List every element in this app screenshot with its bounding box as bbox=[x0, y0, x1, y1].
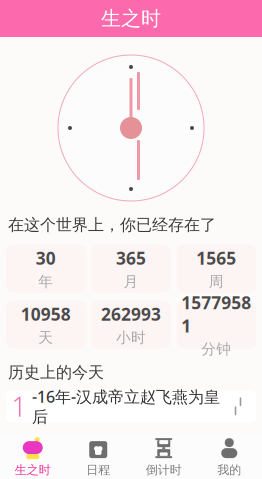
staticText: 我的 bbox=[217, 463, 241, 477]
staticText: 天 bbox=[38, 329, 53, 347]
staticText: 月 bbox=[123, 273, 138, 291]
staticText: -16年-汉成帝立赵飞燕为皇后 bbox=[32, 386, 220, 427]
button[interactable]: 我的 bbox=[196, 435, 262, 479]
button[interactable]: 倒计时 bbox=[131, 435, 196, 479]
staticText: 10958 bbox=[21, 303, 71, 326]
staticText: 30 bbox=[36, 247, 56, 270]
staticText: 倒计时 bbox=[146, 463, 182, 477]
staticText: 在这个世界上，你已经存在了 bbox=[8, 215, 216, 235]
staticText: 历史上的今天 bbox=[8, 363, 104, 382]
button[interactable]: 生之时 bbox=[0, 435, 65, 479]
staticText: 15779581 bbox=[181, 291, 251, 337]
staticText: 1565 bbox=[196, 247, 236, 270]
staticText: 365 bbox=[116, 247, 146, 270]
button[interactable]: 1 bbox=[0, 390, 262, 422]
button[interactable]: 日程 bbox=[65, 435, 131, 479]
staticText: 分钟 bbox=[201, 340, 231, 358]
staticText: 1 bbox=[11, 389, 26, 424]
staticText: 年 bbox=[38, 273, 53, 291]
staticText: 生之时 bbox=[15, 463, 51, 477]
staticText: 周 bbox=[209, 273, 224, 291]
staticText: 262993 bbox=[101, 303, 161, 326]
staticText: 日程 bbox=[86, 463, 110, 477]
staticText: 小时 bbox=[116, 329, 146, 347]
staticText: 生之时 bbox=[101, 6, 161, 31]
